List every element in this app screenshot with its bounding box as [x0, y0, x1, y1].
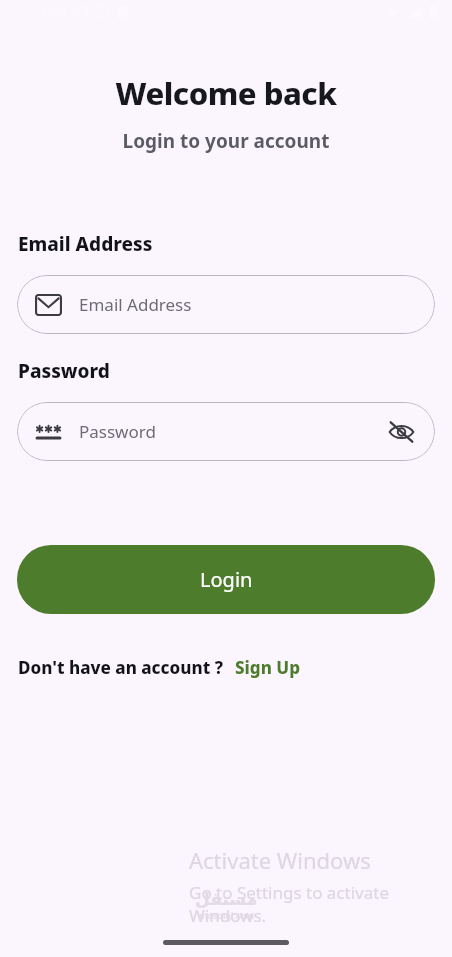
staticText: Sign Up	[235, 656, 300, 679]
staticText: Email Address	[79, 293, 192, 316]
staticText: Password	[79, 420, 381, 443]
staticText: Welcome back	[0, 72, 452, 114]
button[interactable]: Email Address	[17, 275, 435, 334]
button[interactable]: Show password	[381, 412, 421, 452]
staticText: Password	[18, 358, 110, 384]
button[interactable]: Sign Up	[233, 654, 302, 681]
button[interactable]: Login	[17, 545, 435, 614]
staticText: Login to your account	[0, 128, 452, 154]
staticText: Email Address	[18, 231, 153, 257]
staticText: Go to Settings to activate Windows.	[189, 881, 452, 927]
staticText: mostaql.com	[199, 909, 254, 921]
staticText: Login	[200, 566, 253, 593]
staticText: مستقل	[195, 889, 258, 909]
staticText: Don't have an account ?	[18, 656, 223, 679]
staticText: Activate Windows	[189, 845, 371, 875]
button[interactable]: Password	[17, 402, 435, 461]
